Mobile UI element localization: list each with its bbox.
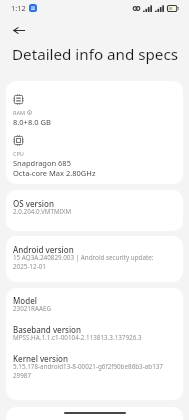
staticText: Octa-core Max 2.80GHz — [13, 168, 96, 178]
staticText: Baseband version — [13, 324, 82, 335]
staticText: 29987 — [13, 371, 32, 380]
button[interactable]: OS version — [6, 190, 183, 231]
button[interactable]: Back — [5, 17, 32, 44]
button[interactable]: Model — [6, 288, 183, 400]
staticText: Snapdragon 685 — [13, 158, 71, 168]
staticText: MPSS.HA.1.1.c1-00104-2.113813.3.137926.3 — [13, 333, 142, 342]
staticText: Android version — [13, 244, 74, 255]
staticText: RAM — [13, 109, 25, 116]
staticText: Detailed info and specs — [12, 44, 178, 65]
button[interactable]: RAM — [6, 81, 183, 184]
staticText: 2.0.204.0.VMTMIXM — [13, 207, 72, 216]
staticText: CPU — [13, 150, 24, 157]
button[interactable]: Android version — [6, 236, 183, 282]
staticText: 23021RAAEG — [13, 304, 52, 313]
staticText: 8.0+8.0 GB — [13, 117, 51, 127]
staticText: 1:12 — [11, 3, 26, 13]
staticText: 2025-12-01 — [13, 262, 46, 271]
staticText: 15 AQ3A.240829.003 | Android security up… — [13, 253, 154, 262]
staticText: OS version — [13, 198, 54, 209]
staticText: Model — [13, 295, 37, 306]
staticText: Kernel version — [13, 353, 69, 364]
staticText: 5.15.178-android13-8-00021-g6f2f90be86b3… — [13, 362, 163, 371]
